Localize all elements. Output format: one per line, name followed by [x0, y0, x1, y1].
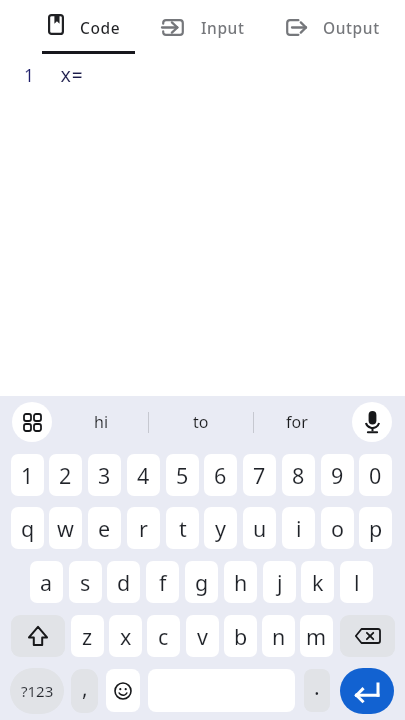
button[interactable]: . [304, 669, 330, 712]
staticText: u [253, 514, 267, 543]
staticText: 1 [24, 63, 35, 87]
button[interactable]: p [359, 507, 392, 549]
button[interactable]: hi [70, 404, 132, 440]
button[interactable]: Input [158, 6, 254, 50]
staticText: k [312, 568, 324, 597]
button[interactable]: q [11, 507, 44, 549]
staticText: b [234, 622, 248, 651]
button[interactable] [340, 668, 394, 714]
button[interactable]: 6 [204, 454, 237, 496]
button[interactable]: 3 [88, 454, 121, 496]
button[interactable]: 0 [359, 454, 392, 496]
staticText: q [21, 514, 35, 543]
button[interactable]: for [266, 404, 328, 440]
button[interactable]: a [30, 561, 63, 603]
button[interactable]: f [146, 561, 179, 603]
button[interactable]: e [88, 507, 121, 549]
button[interactable]: c [147, 615, 180, 657]
button[interactable]: t [166, 507, 199, 549]
button[interactable] [352, 402, 392, 442]
staticText: m [306, 622, 327, 651]
button[interactable]: ?123 [10, 668, 64, 714]
button[interactable]: 1 [11, 454, 44, 496]
staticText: o [331, 514, 345, 543]
button[interactable]: z [71, 615, 104, 657]
button[interactable]: Code [40, 6, 140, 50]
staticText: 2 [59, 461, 72, 490]
button[interactable]: k [301, 561, 334, 603]
button[interactable]: y [204, 507, 237, 549]
staticText: Output [323, 17, 380, 38]
staticText: 0 [369, 461, 382, 490]
staticText: for [286, 411, 308, 433]
button[interactable] [106, 669, 140, 712]
staticText: 7 [253, 461, 266, 490]
button[interactable]: v [186, 615, 219, 657]
staticText: z [82, 622, 93, 651]
staticText: 4 [137, 461, 150, 490]
staticText: w [57, 514, 74, 543]
staticText: 6 [214, 461, 227, 490]
button[interactable]: i [282, 507, 315, 549]
staticText: Input [201, 17, 245, 38]
staticText: 1 [21, 461, 34, 490]
button[interactable]: 2 [49, 454, 82, 496]
staticText: s [80, 568, 91, 597]
button[interactable]: m [300, 615, 333, 657]
staticText: 8 [292, 461, 305, 490]
staticText: h [234, 568, 248, 597]
staticText: c [158, 622, 169, 651]
staticText: hi [94, 411, 109, 433]
button[interactable] [340, 615, 395, 657]
button[interactable]: , [71, 669, 98, 713]
staticText: . [314, 673, 320, 702]
staticText: a [40, 568, 53, 597]
button[interactable]: s [69, 561, 102, 603]
button[interactable]: d [107, 561, 140, 603]
staticText: g [195, 568, 209, 597]
staticText: t [179, 514, 187, 543]
button[interactable] [11, 615, 65, 657]
button[interactable]: w [49, 507, 82, 549]
staticText: e [98, 514, 111, 543]
button[interactable]: 7 [243, 454, 276, 496]
staticText: d [117, 568, 131, 597]
staticText: , [82, 674, 88, 703]
button[interactable]: to [170, 404, 232, 440]
button[interactable]: 5 [166, 454, 199, 496]
staticText: 3 [98, 461, 111, 490]
staticText: Code [80, 17, 121, 38]
button[interactable]: u [243, 507, 276, 549]
staticText: 9 [331, 461, 344, 490]
staticText: x= [60, 62, 83, 88]
staticText: ?123 [21, 681, 54, 701]
button[interactable]: r [127, 507, 160, 549]
button[interactable]: o [321, 507, 354, 549]
button[interactable]: 4 [127, 454, 160, 496]
staticText: x [120, 622, 132, 651]
staticText: f [159, 568, 167, 597]
staticText: to [193, 411, 209, 433]
staticText: r [139, 514, 148, 543]
button[interactable]: h [224, 561, 257, 603]
button[interactable]: b [224, 615, 257, 657]
staticText: y [215, 514, 226, 543]
button[interactable]: x [109, 615, 142, 657]
staticText: n [272, 622, 286, 651]
button[interactable]: 8 [282, 454, 315, 496]
staticText: l [354, 568, 360, 597]
button[interactable]: n [262, 615, 295, 657]
button[interactable]: j [263, 561, 296, 603]
staticText: 5 [176, 461, 189, 490]
button[interactable]: l [340, 561, 373, 603]
staticText: v [197, 622, 208, 651]
button[interactable]: 9 [321, 454, 354, 496]
button[interactable] [12, 402, 52, 442]
staticText: j [277, 568, 283, 597]
staticText: i [296, 514, 302, 543]
staticText: p [369, 514, 383, 543]
button[interactable]: g [185, 561, 218, 603]
button[interactable]: Output [281, 6, 387, 50]
